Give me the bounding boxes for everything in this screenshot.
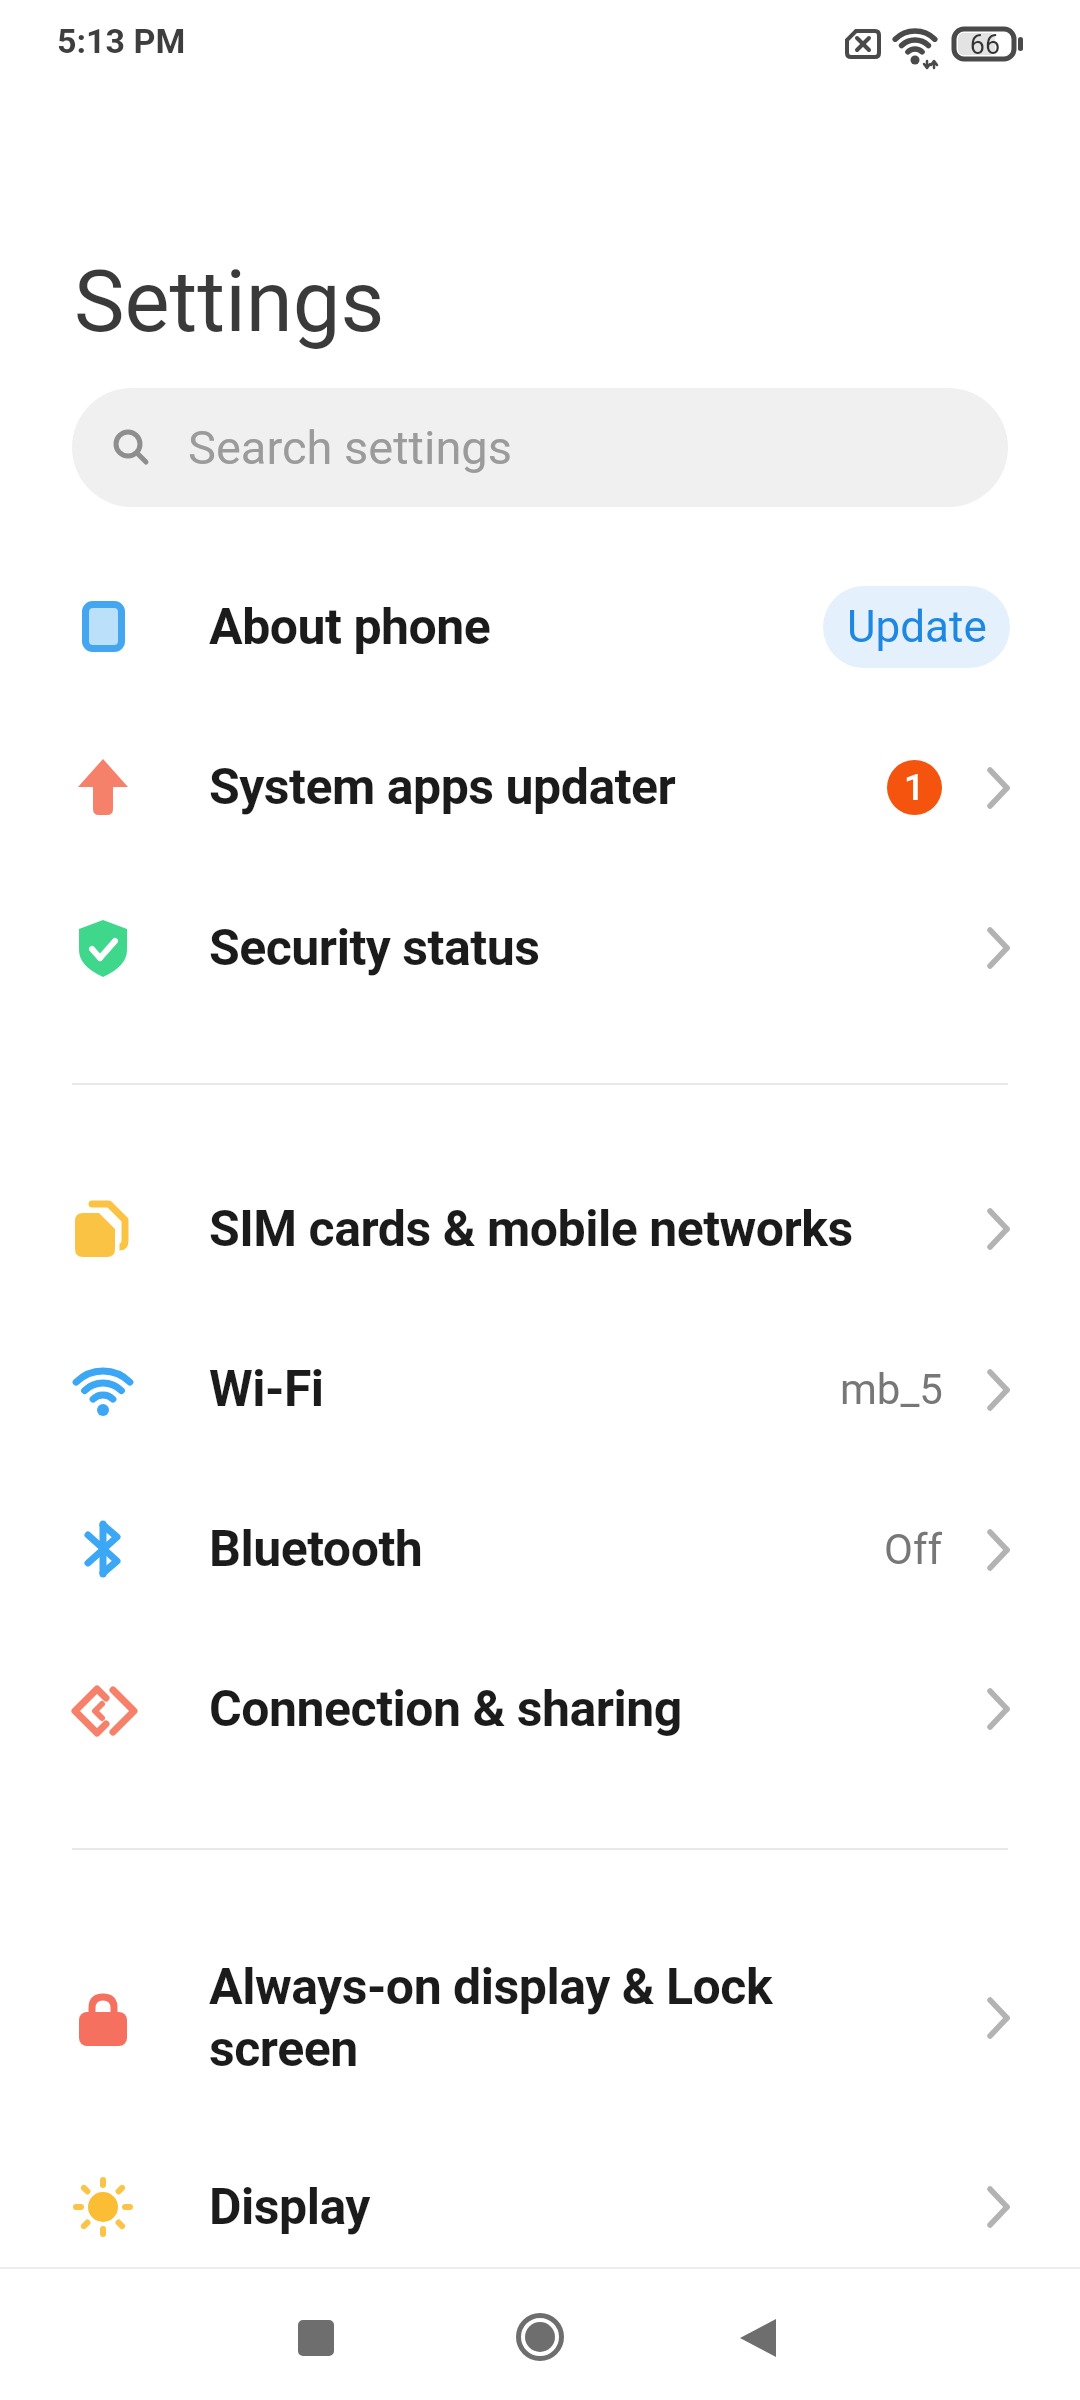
staticText: 1 [904,767,925,809]
button[interactable]: Display [0,2127,1080,2287]
staticText: Display [209,2178,370,2237]
button[interactable]: Update [823,586,1010,668]
staticText: Off [884,1525,943,1574]
staticText: Search settings [188,420,512,475]
button[interactable]: System apps updater [0,707,1080,867]
staticText: Wi-Fi [209,1360,324,1419]
staticText: Settings [74,252,385,352]
staticText: 66 [963,29,1007,61]
staticText: Connection & sharing [209,1680,682,1739]
staticText: mb_5 [840,1365,943,1414]
staticText: SIM cards & mobile networks [209,1200,853,1259]
staticText: Always-on display & Lock screen [209,1958,773,2078]
button[interactable]: Always-on display & Lock screen [0,1908,1080,2128]
button[interactable] [723,2302,795,2374]
button[interactable]: SIM cards & mobile networks [0,1149,1080,1309]
staticText: About phone [209,598,491,657]
button[interactable]: Search settings [72,388,1008,507]
staticText: Bluetooth [209,1520,423,1579]
staticText: 5:13 PM [57,21,186,61]
button[interactable]: Wi-Fi [0,1309,1080,1469]
button[interactable]: Bluetooth [0,1469,1080,1629]
button[interactable]: Connection & sharing [0,1629,1080,1789]
staticText: System apps updater [209,758,676,817]
button[interactable] [280,2302,352,2374]
staticText: Update [847,601,987,653]
button[interactable] [504,2301,576,2373]
button[interactable]: Security status [0,868,1080,1028]
staticText: Security status [209,919,540,978]
button[interactable]: About phone [0,547,1080,707]
